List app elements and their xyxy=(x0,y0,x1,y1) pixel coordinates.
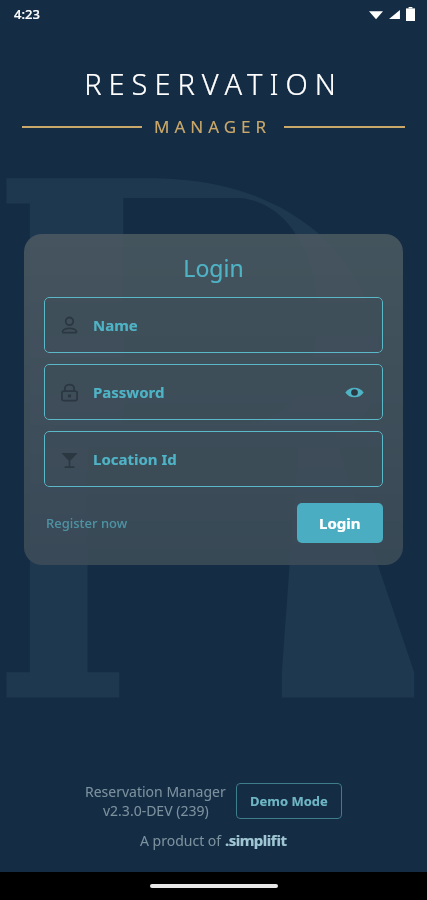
staticText: Demo Mode xyxy=(250,792,328,810)
button[interactable]: Location Id xyxy=(44,431,383,487)
button[interactable]: Name xyxy=(44,297,383,353)
staticText: Login xyxy=(319,513,361,533)
button[interactable]: Password xyxy=(44,364,383,420)
staticText: MANAGER xyxy=(154,115,272,138)
staticText: A product of xyxy=(140,831,225,850)
staticText: Register now xyxy=(46,514,128,532)
staticText: Reservation Manager xyxy=(85,782,226,801)
staticText: .simplifit xyxy=(225,830,287,850)
button[interactable]: Login xyxy=(297,503,383,543)
staticText: Password xyxy=(93,382,165,402)
button[interactable]: Show password xyxy=(342,380,367,405)
button[interactable]: Demo Mode xyxy=(236,783,342,819)
staticText: Name xyxy=(93,315,138,335)
staticText: v2.3.0-DEV (239) xyxy=(103,801,209,820)
staticText: 4:23 xyxy=(14,5,40,23)
staticText: Login xyxy=(44,252,383,283)
button[interactable]: Register now xyxy=(44,508,130,538)
staticText: RESERVATION xyxy=(84,64,343,103)
staticText: Location Id xyxy=(93,449,177,469)
